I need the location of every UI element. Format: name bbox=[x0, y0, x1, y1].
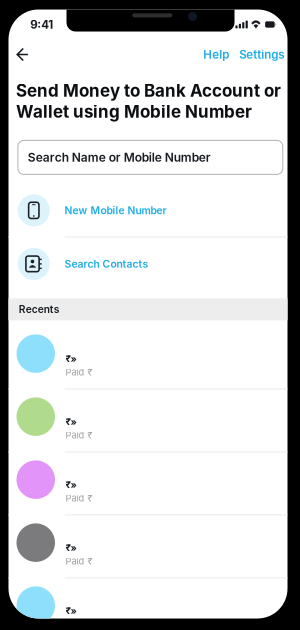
staticText: ₹» bbox=[65, 542, 76, 554]
button[interactable]: ₹» bbox=[8, 326, 287, 389]
staticText: Send Money to Bank Account or bbox=[16, 80, 281, 101]
staticText: ₹» bbox=[65, 605, 76, 617]
button[interactable]: Search Name or Mobile Number bbox=[18, 140, 283, 174]
button[interactable]: Settings bbox=[235, 40, 287, 68]
staticText: ₹» bbox=[65, 353, 76, 365]
staticText: Wallet using Mobile Number bbox=[16, 101, 252, 122]
staticText: ₹» bbox=[65, 479, 76, 491]
button[interactable]: Back bbox=[8, 40, 35, 68]
staticText: Paid ₹ bbox=[65, 430, 92, 441]
staticText: 9:41 bbox=[30, 17, 53, 31]
button[interactable]: New Mobile Number bbox=[8, 184, 287, 237]
staticText: Paid ₹ bbox=[65, 556, 92, 567]
staticText: ₹» bbox=[65, 416, 76, 428]
staticText: New Mobile Number bbox=[65, 204, 167, 217]
staticText: Search Name or Mobile Number bbox=[28, 150, 211, 165]
staticText: Settings bbox=[239, 47, 284, 61]
button[interactable]: ₹» bbox=[8, 515, 287, 578]
staticText: Paid ₹ bbox=[65, 367, 92, 378]
button[interactable]: ₹» bbox=[8, 452, 287, 515]
button[interactable]: Help bbox=[197, 40, 235, 68]
button[interactable]: Search Contacts bbox=[8, 237, 287, 290]
staticText: Paid ₹ bbox=[65, 493, 92, 504]
staticText: Search Contacts bbox=[65, 258, 149, 270]
staticText: Recents bbox=[19, 303, 60, 315]
staticText: Help bbox=[203, 47, 229, 61]
button[interactable]: ₹» bbox=[8, 389, 287, 452]
button[interactable]: ₹» bbox=[8, 578, 287, 630]
